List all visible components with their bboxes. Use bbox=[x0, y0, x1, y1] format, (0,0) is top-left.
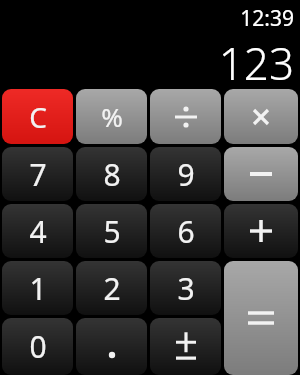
button[interactable]: Plus bbox=[224, 204, 298, 258]
button[interactable]: Multiply bbox=[224, 89, 298, 144]
button[interactable]: Decimal point bbox=[76, 318, 147, 375]
staticText: 12:39 bbox=[240, 4, 294, 33]
staticText: C bbox=[29, 98, 47, 136]
staticText: 2 bbox=[103, 268, 121, 309]
button[interactable]: 0 bbox=[2, 318, 73, 375]
button[interactable]: 3 bbox=[150, 261, 221, 315]
staticText: 0 bbox=[29, 326, 47, 367]
button[interactable]: Equals bbox=[224, 261, 298, 375]
button[interactable]: Minus bbox=[224, 147, 298, 201]
staticText: 8 bbox=[103, 154, 121, 195]
staticText: 4 bbox=[29, 211, 47, 252]
button[interactable]: 5 bbox=[76, 204, 147, 258]
button[interactable]: 9 bbox=[150, 147, 221, 201]
staticText: 7 bbox=[29, 154, 47, 195]
staticText: 1 bbox=[29, 268, 47, 309]
button[interactable]: Plus minus sign bbox=[150, 318, 221, 375]
staticText: 5 bbox=[103, 211, 121, 252]
button[interactable]: 7 bbox=[2, 147, 73, 201]
staticText: % bbox=[101, 99, 123, 134]
staticText: 9 bbox=[177, 154, 195, 195]
button[interactable]: 8 bbox=[76, 147, 147, 201]
button[interactable]: % bbox=[76, 89, 147, 144]
button[interactable]: C bbox=[2, 89, 73, 144]
button[interactable]: 6 bbox=[150, 204, 221, 258]
staticText: 123 bbox=[218, 33, 294, 93]
button[interactable]: 2 bbox=[76, 261, 147, 315]
button[interactable]: 1 bbox=[2, 261, 73, 315]
staticText: 3 bbox=[177, 268, 195, 309]
button[interactable]: Divide bbox=[150, 89, 221, 144]
staticText: 6 bbox=[177, 211, 195, 252]
button[interactable]: 4 bbox=[2, 204, 73, 258]
